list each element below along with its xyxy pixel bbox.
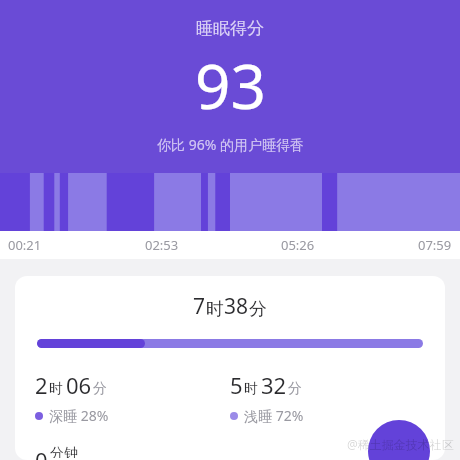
staticText: 睡眠得分 [196, 18, 264, 39]
staticText: 02:53 [145, 236, 179, 254]
staticText: 浅睡 72% [244, 406, 304, 425]
staticText: 时 [49, 380, 63, 398]
staticText: @稀土掘金技术社区 [347, 436, 454, 452]
staticText: 06 [66, 370, 92, 400]
staticText: 深睡 28% [49, 406, 109, 425]
staticText: 分 [93, 380, 107, 398]
staticText: 0 [35, 445, 48, 460]
staticText: 32 [261, 370, 287, 400]
staticText: 分 [288, 380, 302, 398]
staticText: 93 [195, 43, 266, 127]
staticText: 你比 96% 的用户睡得香 [157, 135, 304, 154]
staticText: 5 [230, 370, 243, 400]
staticText: 分钟 [50, 445, 78, 458]
staticText: 00:21 [8, 236, 42, 254]
button[interactable]: 7 [15, 276, 445, 460]
staticText: 05:26 [281, 236, 315, 254]
button[interactable]: Add [368, 420, 430, 460]
staticText: 7 [193, 292, 206, 321]
staticText: 38 [224, 292, 249, 321]
staticText: 2 [35, 370, 48, 400]
staticText: 分 [249, 298, 267, 321]
staticText: 时 [244, 380, 258, 398]
staticText: 07:59 [418, 236, 452, 254]
staticText: 时 [206, 298, 224, 321]
